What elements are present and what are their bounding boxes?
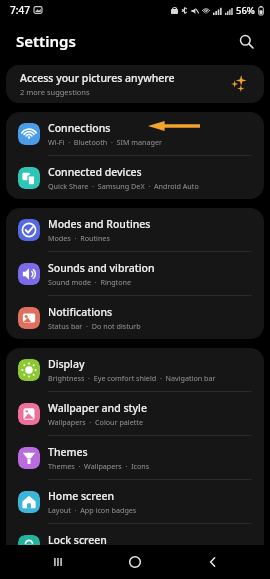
button[interactable]: Connected devices [6, 156, 264, 199]
staticText: 56% [236, 4, 255, 17]
staticText: Lock screen [48, 533, 107, 547]
button[interactable]: Home [115, 545, 155, 579]
staticText: Brightness · Eye comfort shield · Naviga… [48, 373, 216, 383]
button[interactable]: Sounds and vibration [6, 252, 264, 295]
staticText: Wallpaper and style [48, 401, 147, 415]
button[interactable]: Back [193, 545, 233, 579]
button[interactable]: Lock screen [6, 524, 264, 567]
staticText: Settings [16, 31, 76, 51]
button[interactable]: Access your pictures anywhere [6, 65, 264, 103]
staticText: Screen lock type · Always On Display [48, 549, 174, 559]
button[interactable]: Display [6, 348, 264, 391]
staticText: Themes · Wallpapers · Icons [48, 461, 150, 471]
staticText: Sound mode · Ringtone [48, 277, 132, 287]
staticText: Notifications [48, 305, 113, 319]
staticText: Themes [48, 445, 88, 459]
staticText: Display [48, 357, 85, 371]
staticText: Wallpapers · Colour palette [48, 417, 143, 427]
staticText: Status bar · Do not disturb [48, 321, 141, 331]
staticText: Layout · App icon badges [48, 505, 137, 515]
button[interactable]: Search settings [232, 27, 260, 55]
staticText: Home screen [48, 489, 115, 503]
staticText: Modes · Routines [48, 233, 110, 243]
staticText: Connected devices [48, 165, 142, 179]
staticText: Connections [48, 121, 111, 135]
staticText: Modes and Routines [48, 217, 151, 231]
staticText: 2 more suggestions [20, 87, 90, 97]
button[interactable]: Recent apps [38, 545, 78, 579]
staticText: Sounds and vibration [48, 261, 155, 275]
button[interactable]: Notifications [6, 296, 264, 339]
button[interactable]: Modes and Routines [6, 208, 264, 251]
staticText: Quick Share · Samsung DeX · Android Auto [48, 181, 199, 191]
staticText: Wi-Fi · Bluetooth · SIM manager [48, 137, 163, 147]
staticText: Access your pictures anywhere [20, 71, 175, 85]
button[interactable]: Connections [6, 112, 264, 155]
button[interactable]: Wallpaper and style [6, 392, 264, 435]
button[interactable]: Home screen [6, 480, 264, 523]
button[interactable]: Themes [6, 436, 264, 479]
staticText: 7:47 [10, 3, 30, 17]
